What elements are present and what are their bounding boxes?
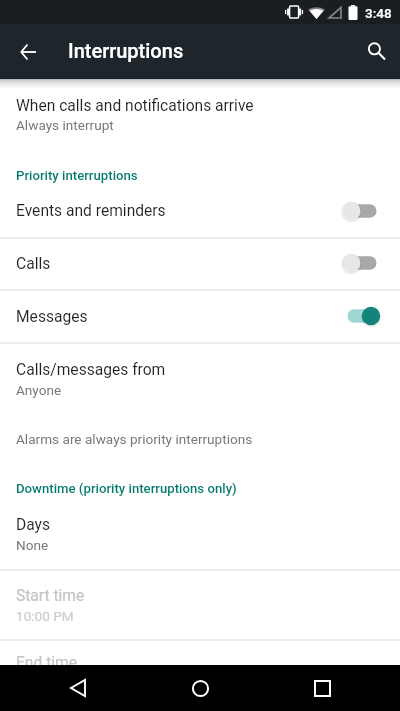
- button[interactable]: [0, 237, 400, 290]
- staticText: 10:00 PM: [16, 608, 74, 624]
- button[interactable]: [0, 78, 400, 141]
- button[interactable]: Recent apps: [292, 665, 352, 711]
- staticText: Start time: [16, 587, 85, 605]
- button[interactable]: [0, 184, 400, 237]
- staticText: Alarms are always priority interruptions: [16, 431, 253, 447]
- staticText: Interruptions: [68, 39, 184, 62]
- staticText: End time: [16, 654, 77, 672]
- button[interactable]: Search: [354, 29, 399, 74]
- button[interactable]: Home: [170, 665, 230, 711]
- button[interactable]: [0, 289, 400, 342]
- button[interactable]: Navigate up: [5, 29, 50, 74]
- staticText: Calls/messages from: [16, 361, 166, 379]
- button[interactable]: [0, 343, 400, 405]
- staticText: None: [16, 537, 49, 553]
- staticText: Days: [16, 516, 51, 534]
- staticText: Events and reminders: [16, 202, 166, 220]
- staticText: Calls: [16, 255, 51, 273]
- staticText: Priority interruptions: [16, 168, 138, 183]
- button[interactable]: Back: [48, 665, 108, 711]
- button[interactable]: [0, 505, 400, 568]
- staticText: When calls and notifications arrive: [16, 97, 254, 115]
- staticText: Downtime (priority interruptions only): [16, 481, 237, 496]
- staticText: Anyone: [16, 382, 62, 398]
- staticText: 3:48: [365, 5, 392, 21]
- staticText: Always interrupt: [16, 117, 114, 133]
- button[interactable]: [0, 569, 400, 639]
- staticText: Messages: [16, 308, 88, 326]
